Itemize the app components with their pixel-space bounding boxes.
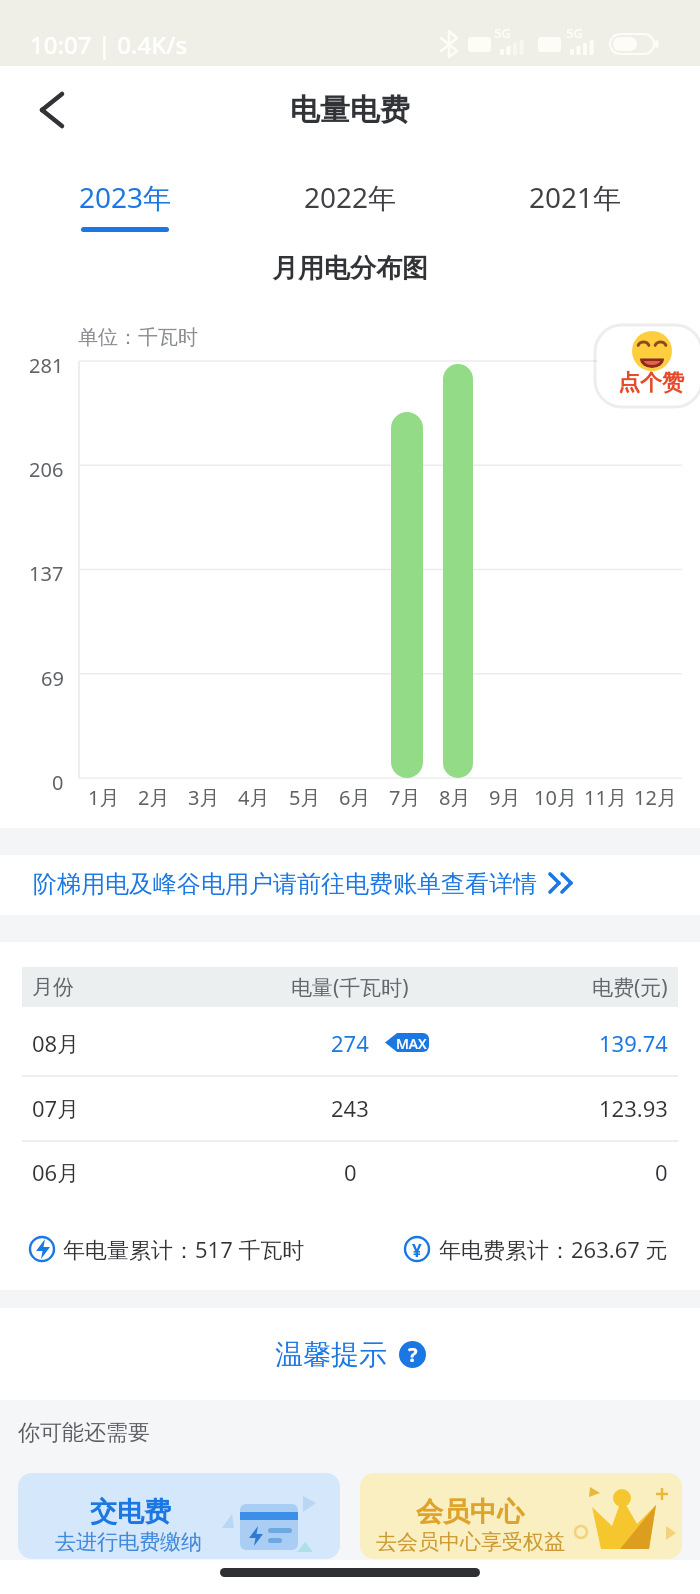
staticText: 7月 bbox=[389, 784, 421, 811]
button[interactable] bbox=[597, 327, 700, 405]
staticText: 139.74 bbox=[599, 1028, 668, 1058]
staticText: 69 bbox=[41, 665, 64, 692]
staticText: MAX bbox=[396, 1034, 427, 1053]
button[interactable] bbox=[18, 1473, 340, 1559]
button[interactable]: 2023年 bbox=[50, 175, 200, 219]
staticText: 月用电分布图 bbox=[272, 252, 428, 285]
staticText: 274 bbox=[331, 1028, 369, 1058]
button[interactable] bbox=[0, 855, 700, 915]
button[interactable]: 2022年 bbox=[275, 175, 425, 219]
staticText: 0 bbox=[655, 1157, 668, 1187]
staticText: 2022年 bbox=[304, 178, 397, 216]
button[interactable] bbox=[360, 1473, 682, 1559]
staticText: 2月 bbox=[138, 784, 170, 811]
staticText: 电费(元) bbox=[592, 973, 668, 1001]
staticText: 年电费累计：263.67 元 bbox=[439, 1234, 668, 1264]
staticText: 1月 bbox=[88, 784, 120, 811]
staticText: 137 bbox=[29, 560, 64, 587]
staticText: 点个赞 bbox=[618, 369, 684, 397]
staticText: 会员中心 bbox=[416, 1495, 524, 1529]
staticText: 你可能还需要 bbox=[18, 1419, 150, 1447]
staticText: 电量电费 bbox=[290, 91, 410, 129]
staticText: 243 bbox=[331, 1093, 369, 1123]
staticText: ? bbox=[408, 1341, 418, 1368]
staticText: 8月 bbox=[439, 784, 471, 811]
button[interactable] bbox=[30, 88, 74, 132]
staticText: 123.93 bbox=[599, 1093, 668, 1123]
staticText: 5G bbox=[494, 24, 511, 40]
staticText: 去进行电费缴纳 bbox=[55, 1529, 202, 1555]
staticText: 281 bbox=[29, 352, 64, 379]
staticText: 6月 bbox=[339, 784, 371, 811]
staticText: 交电费 bbox=[90, 1495, 171, 1529]
staticText: 4月 bbox=[238, 784, 270, 811]
staticText: 06月 bbox=[32, 1157, 80, 1187]
staticText: 10:07 | 0.4K/s bbox=[30, 28, 188, 60]
staticText: 月份 bbox=[32, 974, 74, 1000]
staticText: 阶梯用电及峰谷电用户请前往电费账单查看详情 bbox=[33, 869, 537, 899]
staticText: 9月 bbox=[489, 784, 521, 811]
staticText: ¥ bbox=[412, 1239, 422, 1259]
staticText: 0 bbox=[344, 1157, 357, 1187]
staticText: 年电量累计：517 千瓦时 bbox=[63, 1234, 305, 1264]
staticText: 5G bbox=[566, 24, 583, 40]
button[interactable]: 温馨提示 bbox=[0, 1330, 700, 1378]
staticText: 10月 bbox=[534, 784, 577, 811]
staticText: 11月 bbox=[584, 784, 627, 811]
staticText: 08月 bbox=[32, 1028, 80, 1058]
staticText: 206 bbox=[29, 456, 64, 483]
staticText: 12月 bbox=[634, 784, 677, 811]
staticText: 单位：千瓦时 bbox=[78, 325, 198, 350]
staticText: 2023年 bbox=[79, 178, 172, 216]
staticText: 07月 bbox=[32, 1093, 80, 1123]
staticText: 2021年 bbox=[529, 178, 622, 216]
staticText: 0 bbox=[52, 769, 64, 796]
button[interactable]: 2021年 bbox=[500, 175, 650, 219]
staticText: 去会员中心享受权益 bbox=[376, 1529, 565, 1555]
staticText: 电量(千瓦时) bbox=[291, 973, 409, 1001]
staticText: 温馨提示 bbox=[275, 1337, 387, 1372]
staticText: 5月 bbox=[289, 784, 321, 811]
staticText: 3月 bbox=[188, 784, 220, 811]
